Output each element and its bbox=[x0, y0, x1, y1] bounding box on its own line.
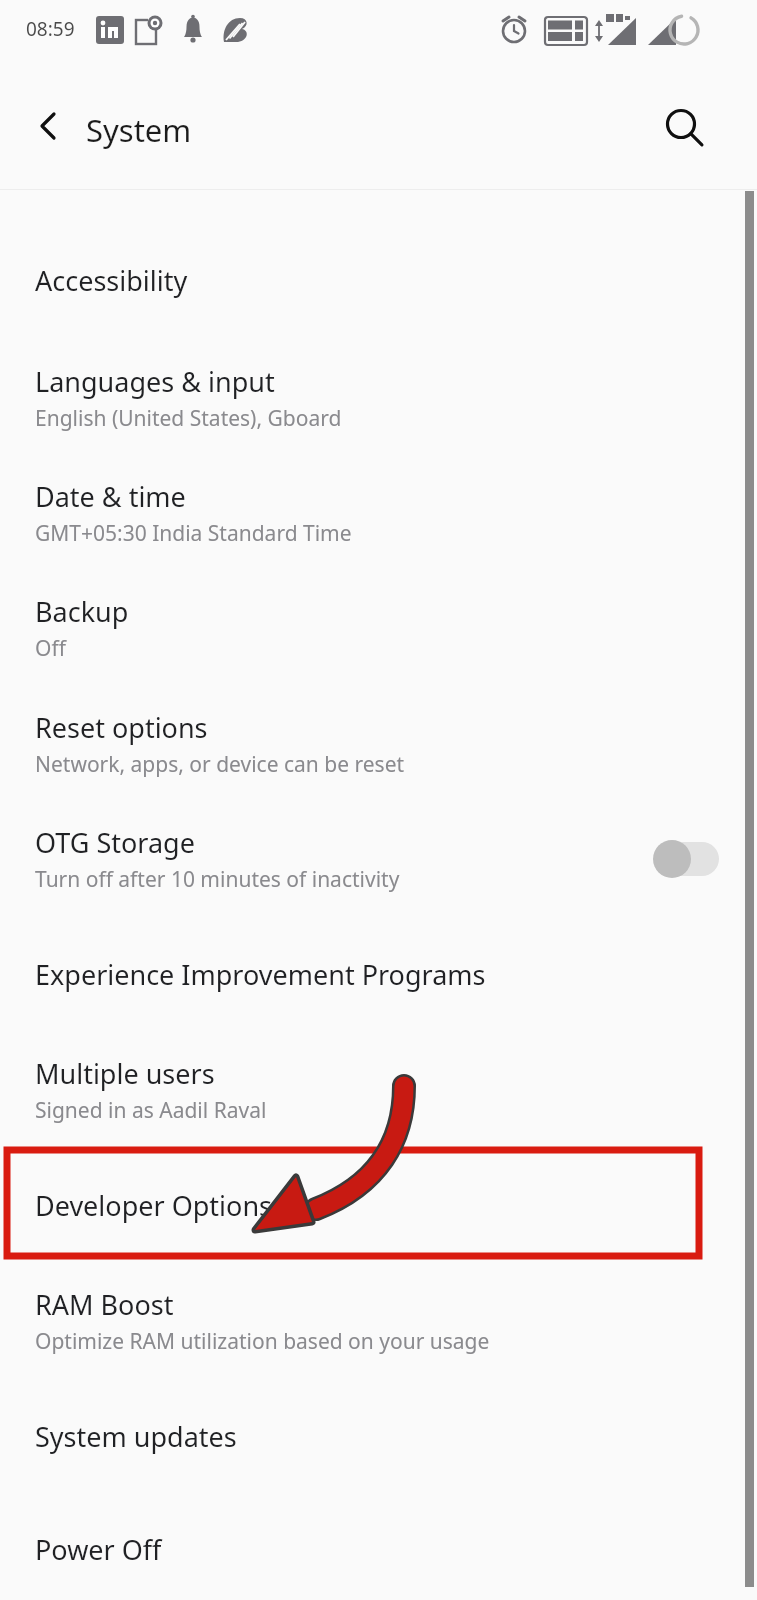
button[interactable]: RAM Boost bbox=[0, 1244, 757, 1360]
staticText: Accessibility bbox=[35, 262, 188, 299]
staticText: System bbox=[86, 109, 192, 151]
staticText: Power Off bbox=[35, 1531, 162, 1568]
staticText: English (United States), Gboard bbox=[35, 404, 342, 433]
staticText: OTG Storage bbox=[35, 824, 195, 861]
staticText: Languages & input bbox=[35, 363, 275, 400]
staticText: 08:59 bbox=[26, 16, 75, 42]
button[interactable]: Power Off bbox=[0, 1489, 757, 1585]
staticText: Optimize RAM utilization based on your u… bbox=[35, 1327, 490, 1356]
staticText: RAM Boost bbox=[35, 1286, 174, 1323]
staticText: Turn off after 10 minutes of inactivity bbox=[35, 865, 400, 894]
button[interactable]: OTG Storage bbox=[0, 782, 757, 898]
button[interactable]: System updates bbox=[0, 1376, 757, 1472]
button[interactable]: Multiple users bbox=[0, 1013, 757, 1129]
staticText: System updates bbox=[35, 1418, 237, 1455]
staticText: Reset options bbox=[35, 709, 208, 746]
button[interactable]: Accessibility bbox=[0, 220, 757, 316]
staticText: Date & time bbox=[35, 478, 186, 515]
button[interactable]: Languages & input bbox=[0, 321, 757, 437]
button[interactable]: Search bbox=[651, 94, 715, 158]
staticText: Experience Improvement Programs bbox=[35, 956, 486, 993]
button[interactable]: Date & time bbox=[0, 436, 757, 552]
button[interactable]: Backup bbox=[0, 551, 757, 667]
staticText: Network, apps, or device can be reset bbox=[35, 750, 405, 779]
staticText: Backup bbox=[35, 593, 129, 630]
staticText: Signed in as Aadil Raval bbox=[35, 1096, 267, 1125]
staticText: GMT+05:30 India Standard Time bbox=[35, 519, 352, 548]
staticText: Off bbox=[35, 634, 66, 663]
staticText: Developer Options bbox=[35, 1187, 273, 1224]
staticText: Multiple users bbox=[35, 1055, 215, 1092]
button[interactable]: Reset options bbox=[0, 667, 757, 783]
button[interactable]: Back bbox=[14, 94, 78, 158]
button[interactable]: Developer Options bbox=[0, 1145, 757, 1241]
button[interactable]: OTG Storage toggle bbox=[640, 828, 734, 890]
button[interactable]: Experience Improvement Programs bbox=[0, 914, 757, 1010]
